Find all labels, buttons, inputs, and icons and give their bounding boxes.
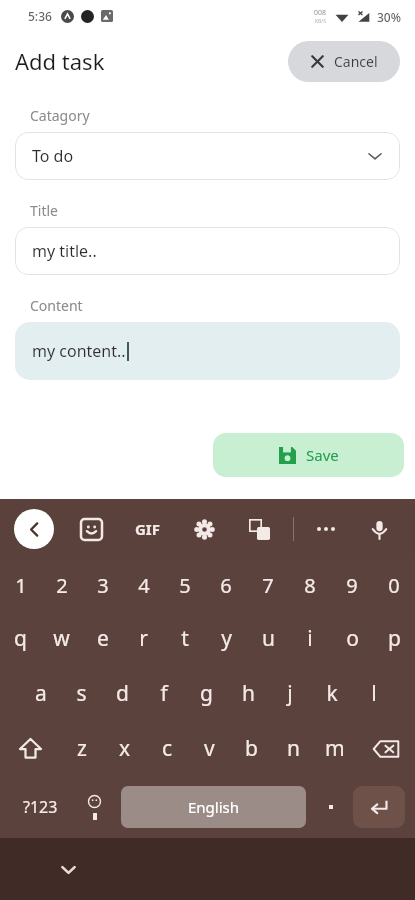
staticText: my title.. [32, 240, 97, 262]
button[interactable]: GIF [131, 515, 164, 543]
button[interactable]: i [289, 611, 331, 666]
button[interactable]: e [82, 611, 123, 666]
button[interactable]: More [313, 516, 339, 542]
staticText: w [53, 624, 70, 653]
button[interactable]: English [121, 786, 306, 828]
button[interactable]: 6 [205, 559, 247, 611]
staticText: a [35, 679, 47, 708]
button[interactable]: 8 [289, 559, 331, 611]
button[interactable]: Emoji [76, 514, 106, 544]
staticText: s [76, 679, 87, 708]
staticText: m [325, 734, 345, 763]
staticText: 8 [304, 572, 316, 599]
staticText: 0 [388, 572, 400, 599]
staticText: Catagory [30, 106, 90, 125]
button[interactable]: c [146, 721, 188, 776]
button[interactable]: p [373, 611, 415, 666]
button[interactable]: 5 [164, 559, 205, 611]
button[interactable]: s [61, 666, 102, 721]
staticText: k [326, 679, 338, 708]
staticText: 008 [314, 8, 327, 18]
button[interactable] [309, 776, 353, 838]
button[interactable]: Back [14, 509, 54, 549]
button[interactable]: my title.. [15, 227, 400, 275]
button[interactable]: 1 [0, 559, 41, 611]
button[interactable]: q [0, 611, 41, 666]
button[interactable]: r [123, 611, 164, 666]
staticText: i [307, 624, 313, 653]
staticText: y [221, 624, 232, 653]
button[interactable]: u [247, 611, 289, 666]
button[interactable]: 7 [247, 559, 289, 611]
button[interactable]: Shift [0, 721, 60, 776]
button[interactable]: j [269, 666, 311, 721]
button[interactable]: b [230, 721, 272, 776]
staticText: r [139, 624, 148, 653]
staticText: Title [30, 201, 58, 220]
button[interactable]: f [143, 666, 185, 721]
button[interactable]: h [227, 666, 269, 721]
button[interactable]: Voice input [364, 514, 394, 544]
other: Expand category [367, 148, 383, 164]
button[interactable]: 9 [331, 559, 373, 611]
staticText: Content [30, 296, 83, 315]
staticText: t [181, 624, 189, 653]
button[interactable]: Cancel [288, 41, 400, 82]
staticText: 5 [179, 572, 191, 599]
button[interactable]: k [311, 666, 353, 721]
staticText: e [97, 624, 109, 653]
button[interactable]: Settings [189, 514, 219, 544]
button[interactable]: 2 [41, 559, 82, 611]
button[interactable]: a [20, 666, 61, 721]
button[interactable]: Hide keyboard [48, 849, 88, 889]
button[interactable]: Backspace [356, 721, 415, 776]
button[interactable]: g [185, 666, 227, 721]
button[interactable]: ?123 [10, 776, 70, 838]
button[interactable]: Emoji and comma [70, 776, 118, 838]
staticText: h [242, 679, 255, 708]
button[interactable]: o [331, 611, 373, 666]
button[interactable]: x [103, 721, 146, 776]
staticText: my content.. [32, 340, 126, 362]
staticText: KB/S [315, 18, 326, 25]
staticText: ?123 [23, 796, 58, 818]
button[interactable]: 4 [123, 559, 164, 611]
button[interactable]: m [314, 721, 356, 776]
button[interactable]: Enter [353, 786, 405, 828]
staticText: 6 [220, 572, 232, 599]
staticText: GIF [135, 519, 160, 539]
button[interactable]: To do [15, 132, 400, 180]
button[interactable]: y [205, 611, 247, 666]
button[interactable]: 3 [82, 559, 123, 611]
staticText: Add task [15, 46, 105, 76]
staticText: 9 [346, 572, 358, 599]
staticText: l [371, 679, 377, 708]
button[interactable]: v [188, 721, 230, 776]
staticText: q [14, 624, 27, 653]
staticText: n [287, 734, 300, 763]
button[interactable]: l [353, 666, 395, 721]
button[interactable]: 0 [373, 559, 415, 611]
staticText: x [119, 734, 131, 763]
staticText: 3 [97, 572, 109, 599]
button[interactable]: z [60, 721, 103, 776]
button[interactable]: d [102, 666, 143, 721]
staticText: b [245, 734, 258, 763]
button[interactable]: my content.. [15, 322, 400, 380]
staticText: 4 [138, 572, 150, 599]
button[interactable]: w [41, 611, 82, 666]
button[interactable]: t [164, 611, 205, 666]
staticText: 1 [15, 572, 27, 599]
staticText: English [188, 797, 240, 817]
staticText: 30% [377, 9, 401, 25]
button[interactable]: Translate [244, 514, 274, 544]
staticText: d [116, 679, 129, 708]
button[interactable]: n [272, 721, 314, 776]
staticText: c [162, 734, 173, 763]
staticText: z [77, 734, 87, 763]
staticText: v [204, 734, 215, 763]
staticText: 2 [56, 572, 68, 599]
staticText: o [346, 624, 359, 653]
staticText: 7 [262, 572, 274, 599]
button[interactable]: Save [213, 433, 404, 477]
